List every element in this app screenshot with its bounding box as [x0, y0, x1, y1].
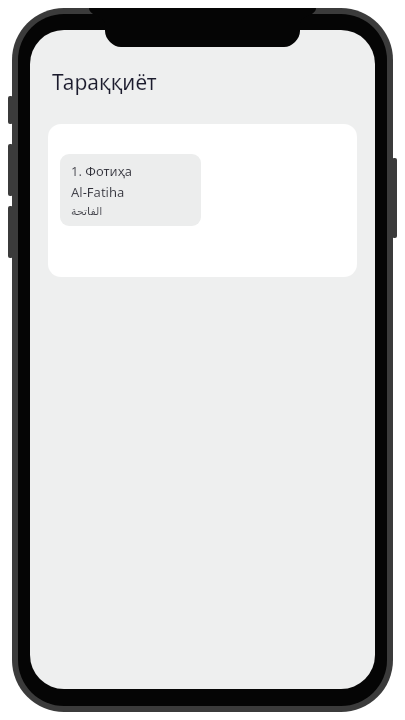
- staticText: Тараққиёт: [52, 68, 157, 97]
- button[interactable]: 1. Фотиҳа: [48, 124, 357, 277]
- staticText: الفاتحة: [71, 205, 103, 218]
- button[interactable]: 1. Фотиҳа: [60, 154, 201, 226]
- staticText: Al-Fatiha: [71, 183, 125, 201]
- staticText: 1. Фотиҳа: [71, 162, 132, 180]
